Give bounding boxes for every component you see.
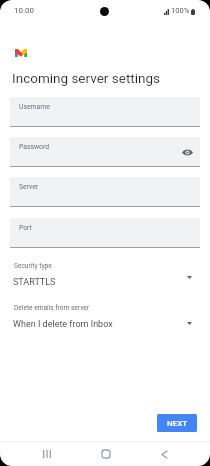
staticText: 10.00 bbox=[14, 6, 35, 15]
button[interactable]: Recent apps bbox=[23, 442, 70, 466]
other: Signal strength bbox=[164, 9, 169, 15]
staticText: Server bbox=[19, 183, 39, 191]
staticText: Port bbox=[19, 224, 32, 232]
staticText: Incoming server settings bbox=[12, 70, 160, 86]
other: Expand bbox=[187, 276, 192, 279]
button[interactable]: Security type bbox=[10, 261, 200, 289]
staticText: NEXT bbox=[167, 419, 188, 428]
staticText: 100% bbox=[171, 6, 190, 15]
other: Show password bbox=[182, 149, 193, 156]
button[interactable]: Back bbox=[141, 442, 188, 466]
other: Battery 100% bbox=[191, 9, 195, 15]
button[interactable]: Port bbox=[10, 218, 200, 248]
button[interactable]: NEXT bbox=[157, 414, 197, 432]
staticText: Username bbox=[19, 103, 50, 111]
staticText: Delete emails from server bbox=[14, 304, 90, 312]
button[interactable]: Server bbox=[10, 177, 200, 207]
staticText: Password bbox=[19, 143, 50, 151]
staticText: Security type bbox=[14, 262, 52, 270]
button[interactable]: Delete emails from server bbox=[10, 303, 200, 331]
button[interactable]: Username bbox=[10, 97, 200, 127]
button[interactable]: Home bbox=[82, 442, 129, 466]
staticText: When I delete from Inbox bbox=[13, 319, 113, 330]
staticText: STARTTLS bbox=[13, 277, 56, 288]
button[interactable]: Password bbox=[10, 137, 200, 167]
other: Expand bbox=[187, 322, 192, 325]
